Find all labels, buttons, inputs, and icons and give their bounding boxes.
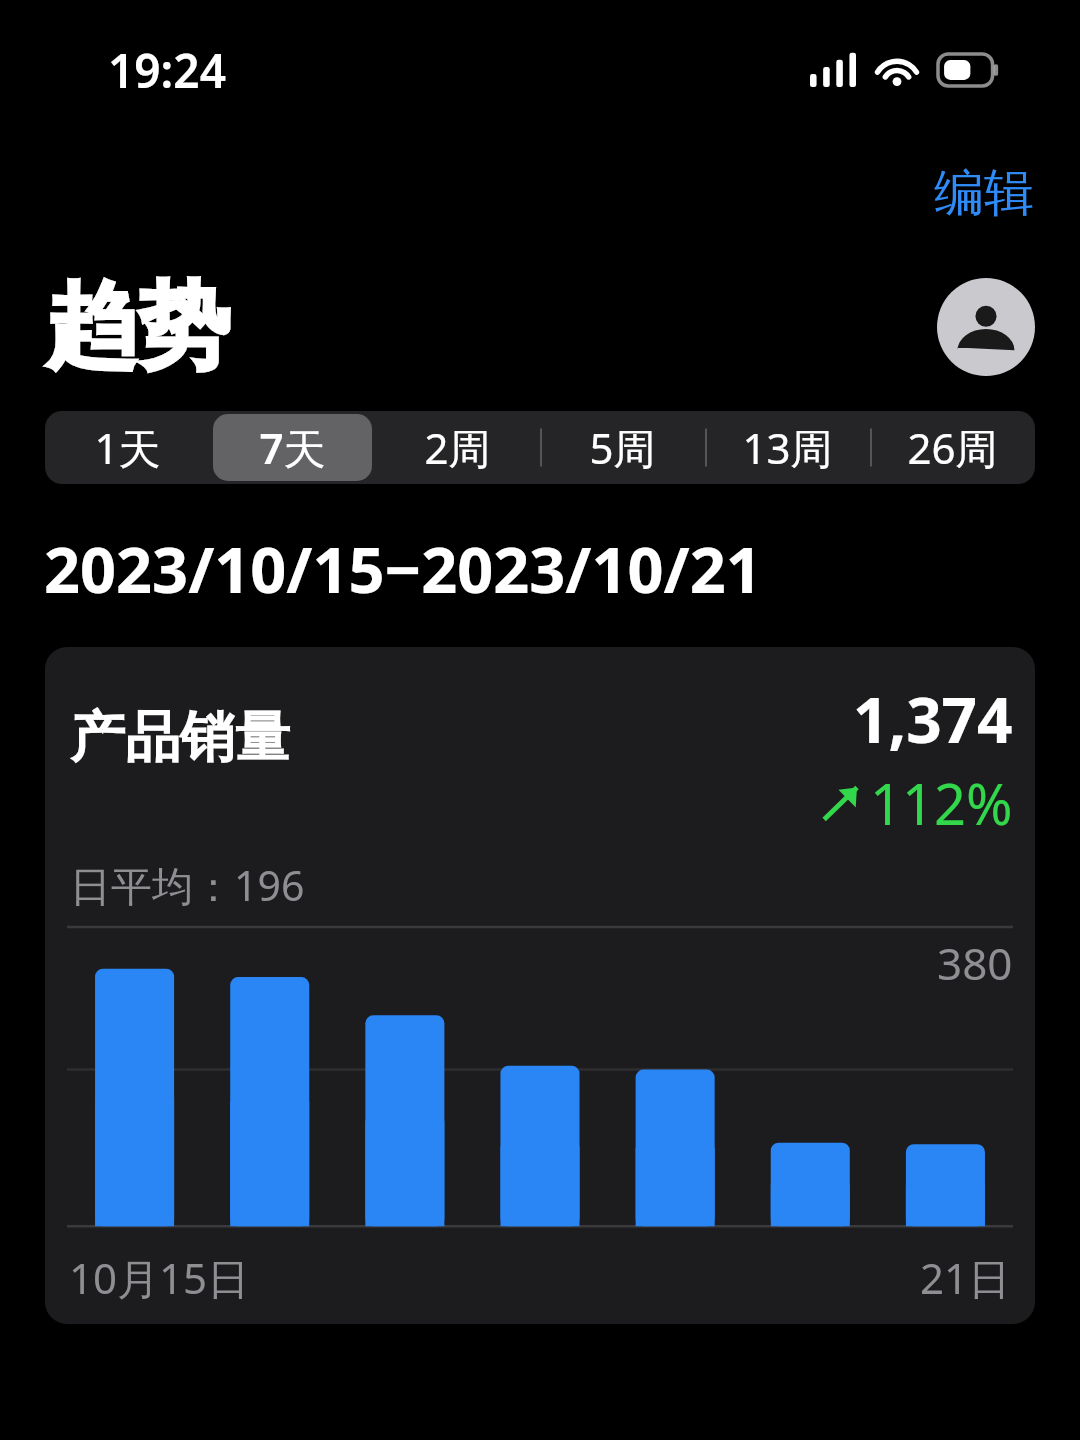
staticText: 日平均：196: [70, 857, 305, 913]
staticText: 2023/10/15−2023/10/21: [44, 526, 762, 612]
staticText: 5周: [589, 419, 656, 476]
staticText: 112%: [870, 765, 1013, 841]
staticText: 19:24: [108, 39, 226, 102]
button[interactable]: 1天: [48, 414, 207, 481]
staticText: 趋势: [46, 269, 230, 385]
staticText: 1天: [94, 419, 161, 476]
staticText: 380: [937, 933, 1013, 993]
button[interactable]: 产品销量: [45, 647, 1035, 1324]
staticText: 21日: [920, 1249, 1011, 1306]
button[interactable]: 5周: [543, 414, 702, 481]
button[interactable]: 2周: [378, 414, 537, 481]
staticText: 10月15日: [69, 1249, 250, 1306]
staticText: 1,374: [853, 677, 1013, 761]
staticText: 7天: [259, 419, 326, 476]
button[interactable]: 编辑: [916, 152, 1052, 235]
button[interactable]: Account: [937, 278, 1035, 376]
staticText: 13周: [742, 419, 833, 476]
staticText: 26周: [907, 419, 998, 476]
button[interactable]: 13周: [708, 414, 867, 481]
button[interactable]: 26周: [873, 414, 1032, 481]
staticText: 产品销量: [70, 703, 290, 772]
button[interactable]: 7天: [213, 414, 372, 481]
staticText: 编辑: [934, 162, 1034, 225]
staticText: 2周: [424, 419, 491, 476]
